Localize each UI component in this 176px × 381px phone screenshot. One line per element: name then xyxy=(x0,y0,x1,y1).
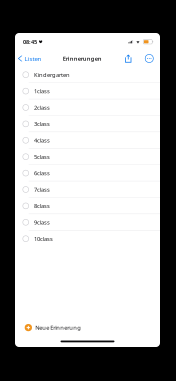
staticText: 1class xyxy=(34,87,50,95)
button[interactable]: Listen xyxy=(15,50,44,66)
button[interactable]: Neue Erinnerung xyxy=(15,319,160,336)
staticText: 2class xyxy=(34,104,50,111)
staticText: Listen xyxy=(24,54,41,63)
staticText: 08:45 xyxy=(23,38,37,45)
staticText: 3class xyxy=(34,120,50,128)
staticText: 10class xyxy=(34,235,53,243)
button[interactable]: 3class xyxy=(15,116,160,132)
staticText: Kindergarten xyxy=(34,71,70,79)
button[interactable]: 8class xyxy=(15,198,160,214)
staticText: 8class xyxy=(34,202,50,210)
staticText: Neue Erinnerung xyxy=(35,324,81,331)
staticText: Erinnerungen xyxy=(63,55,102,62)
button[interactable]: 5class xyxy=(15,148,160,165)
staticText: 9class xyxy=(34,218,50,226)
button[interactable]: 10class xyxy=(15,230,160,247)
button[interactable]: Kindergarten xyxy=(15,66,160,83)
button[interactable]: 9class xyxy=(15,214,160,230)
button[interactable]: 4class xyxy=(15,132,160,148)
button[interactable]: Teilen xyxy=(120,50,136,66)
button[interactable]: Mehr xyxy=(142,50,156,66)
staticText: 5class xyxy=(34,153,50,161)
staticText: 4class xyxy=(34,136,50,144)
button[interactable]: 6class xyxy=(15,165,160,181)
button[interactable]: 7class xyxy=(15,181,160,198)
staticText: 6class xyxy=(34,169,50,177)
button[interactable]: 2class xyxy=(15,99,160,116)
button[interactable]: 1class xyxy=(15,83,160,99)
staticText: 7class xyxy=(34,186,50,193)
